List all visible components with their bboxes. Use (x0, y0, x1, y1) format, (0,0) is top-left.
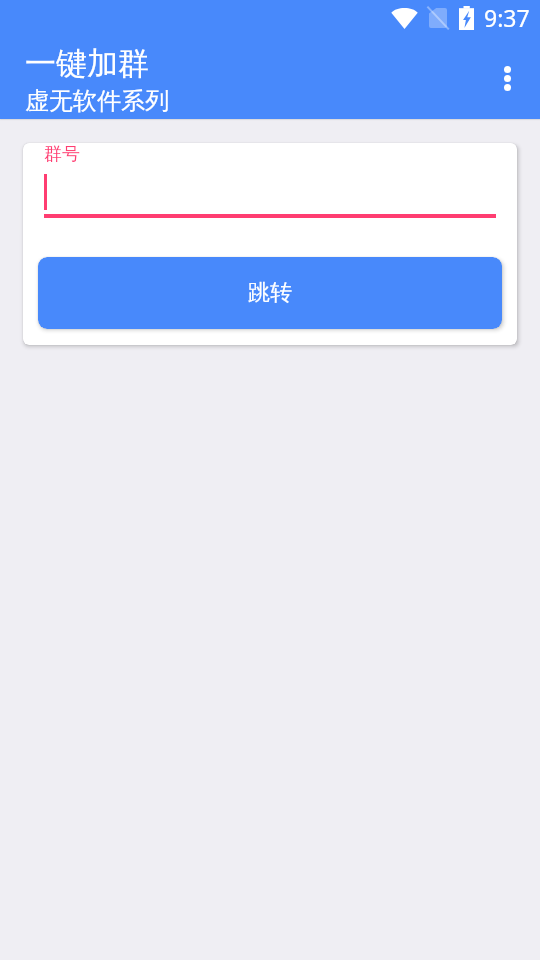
staticText: 9:37 (484, 2, 530, 33)
button[interactable]: 群号 (23, 143, 517, 218)
staticText: 一键加群 (25, 44, 149, 83)
button[interactable]: More options (487, 58, 527, 98)
staticText: 群号 (44, 143, 80, 166)
staticText: 虚无软件系列 (25, 86, 169, 116)
staticText: 跳转 (248, 279, 292, 307)
button[interactable]: 跳转 (38, 257, 502, 329)
